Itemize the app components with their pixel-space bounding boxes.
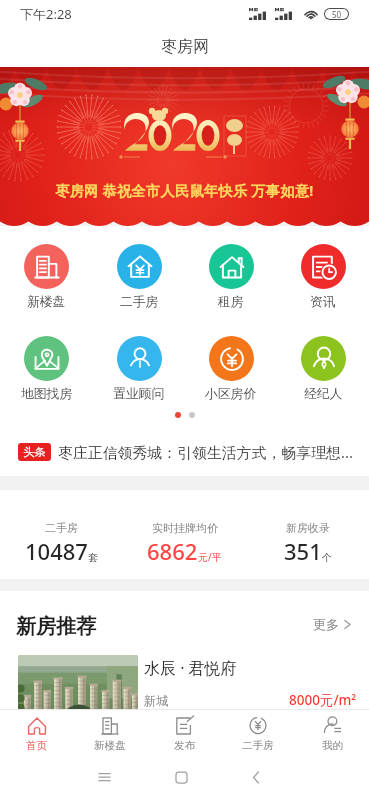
button[interactable]: 经纪人 bbox=[277, 336, 369, 402]
staticText: 351 bbox=[284, 536, 322, 566]
button[interactable]: 资讯 bbox=[277, 244, 369, 310]
staticText: 二手房 bbox=[45, 521, 78, 535]
button[interactable]: 二手房 bbox=[221, 716, 295, 752]
staticText: 新城 bbox=[144, 693, 168, 708]
button[interactable]: 发布 bbox=[147, 716, 221, 752]
staticText: 枣房网 bbox=[161, 37, 209, 57]
staticText: 更多 bbox=[313, 616, 339, 632]
staticText: 个 bbox=[322, 551, 332, 564]
staticText: 新楼盘 bbox=[27, 294, 66, 310]
staticText: 新房收录 bbox=[286, 521, 330, 535]
button[interactable]: 更多 bbox=[301, 600, 369, 640]
button[interactable]: 小区房价 bbox=[185, 336, 277, 402]
button[interactable]: 首页 bbox=[0, 716, 73, 752]
button[interactable]: 新楼盘 bbox=[0, 244, 93, 310]
staticText: 10487 bbox=[25, 536, 88, 566]
button[interactable]: 头条 bbox=[0, 428, 369, 476]
staticText: 枣庄正信领秀城：引领生活方式，畅享理想... bbox=[58, 442, 353, 462]
staticText: 经纪人 bbox=[304, 386, 343, 402]
staticText: 下午2:28 bbox=[20, 5, 72, 23]
button[interactable]: 置业顾问 bbox=[93, 336, 185, 402]
staticText: 置业顾问 bbox=[113, 386, 165, 402]
staticText: 二手房 bbox=[120, 294, 159, 310]
button[interactable]: Home bbox=[151, 757, 211, 797]
button[interactable]: Recent apps bbox=[74, 757, 134, 797]
staticText: 资讯 bbox=[310, 294, 336, 310]
staticText: 小区房价 bbox=[205, 386, 257, 402]
staticText: 8000元/m² bbox=[289, 691, 357, 709]
staticText: 6862 bbox=[147, 536, 198, 566]
staticText: 我的 bbox=[322, 739, 343, 752]
staticText: 新楼盘 bbox=[94, 739, 126, 752]
staticText: 发布 bbox=[174, 739, 195, 752]
staticText: 租房 bbox=[218, 294, 244, 310]
staticText: 头条 bbox=[23, 445, 46, 459]
button[interactable]: 二手房 bbox=[93, 244, 185, 310]
staticText: 二手房 bbox=[242, 739, 274, 752]
staticText: 实时挂牌均价 bbox=[152, 521, 218, 535]
button[interactable]: 我的 bbox=[295, 716, 369, 752]
staticText: 50 bbox=[332, 9, 342, 19]
button[interactable]: 租房 bbox=[185, 244, 277, 310]
staticText: 套 bbox=[88, 551, 98, 564]
staticText: 元/平 bbox=[198, 550, 222, 564]
staticText: 新房推荐 bbox=[16, 614, 96, 639]
staticText: 首页 bbox=[26, 739, 47, 752]
button[interactable]: 地图找房 bbox=[0, 336, 93, 402]
button[interactable]: 水辰 · 君悦府 bbox=[0, 649, 369, 736]
staticText: 地图找房 bbox=[21, 386, 73, 402]
button[interactable]: 新楼盘 bbox=[73, 716, 147, 752]
staticText: 枣房网 恭祝全市人民鼠年快乐 万事如意! bbox=[55, 181, 314, 200]
staticText: 水辰 · 君悦府 bbox=[144, 657, 237, 679]
button[interactable]: Back bbox=[226, 757, 286, 797]
